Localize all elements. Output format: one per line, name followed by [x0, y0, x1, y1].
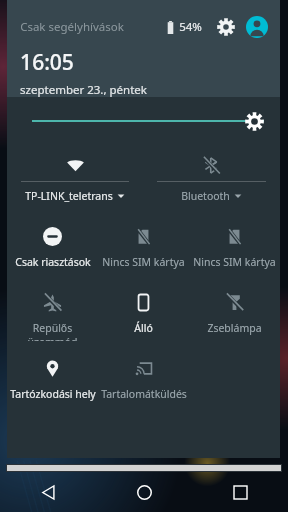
staticText: Bluetooth [181, 189, 230, 203]
staticText: szeptember 23., péntek [20, 82, 147, 97]
staticText: Zseblámpa [207, 321, 262, 335]
staticText: Csak segélyhívások [20, 19, 124, 35]
staticText: Repülős üzemmód [7, 321, 98, 341]
button[interactable]: Home [96, 472, 192, 512]
button[interactable]: Tartalomátküldés [98, 346, 189, 406]
staticText: Csak riasztások [15, 255, 91, 269]
button[interactable]: User profile [243, 13, 271, 41]
staticText: 16:05 [20, 48, 74, 77]
button[interactable]: Repülős üzemmód [7, 280, 98, 346]
button[interactable]: Collapse quick settings [6, 464, 282, 472]
button[interactable]: Recent apps [192, 472, 288, 512]
button[interactable]: Csak riasztások [7, 214, 98, 274]
staticText: TP-LINK_teletrans [25, 189, 113, 203]
button[interactable]: TP-LINK_teletrans [7, 145, 143, 203]
button[interactable]: Zseblámpa [189, 280, 280, 340]
button[interactable]: Brightness [7, 97, 280, 145]
staticText: Nincs SIM kártya [102, 255, 185, 269]
button[interactable]: Settings [213, 14, 239, 40]
button[interactable]: Bluetooth [143, 145, 280, 203]
staticText: Álló [134, 321, 153, 335]
button[interactable]: Álló [98, 280, 189, 340]
staticText: Nincs SIM kártya [193, 255, 276, 269]
staticText: 54% [179, 19, 202, 35]
button[interactable]: Nincs SIM kártya [98, 214, 189, 274]
button[interactable]: Tartózkodási hely [7, 346, 98, 406]
staticText: Tartózkodási hely [10, 387, 96, 401]
button[interactable]: Back [0, 472, 96, 512]
staticText: Tartalomátküldés [101, 387, 187, 401]
button[interactable]: Nincs SIM kártya [189, 214, 280, 274]
